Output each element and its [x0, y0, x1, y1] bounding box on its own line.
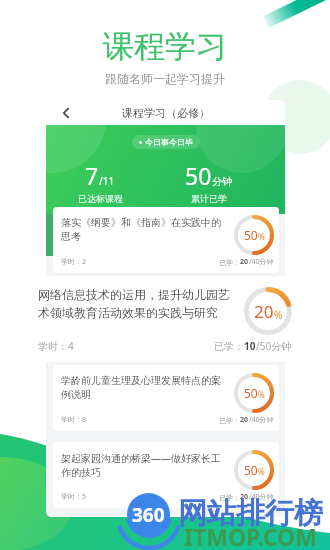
staticText: 课程学习 [103, 27, 227, 66]
staticText: 50 [244, 385, 258, 401]
staticText: 50 [244, 462, 258, 478]
staticText: 分钟 [212, 175, 232, 188]
staticText: /40分钟 [249, 492, 274, 502]
staticText: 已学： [219, 493, 240, 502]
staticText: 20 [254, 300, 274, 323]
staticText: 50 [185, 160, 212, 191]
staticText: 20 [240, 257, 249, 267]
staticText: /11 [99, 174, 115, 188]
button[interactable]: 架起家园沟通的桥梁——做好家长工作的技巧 [53, 442, 279, 508]
staticText: 课程学习（必修） [122, 106, 210, 120]
staticText: 已学： [219, 258, 240, 267]
staticText: 10 [244, 339, 256, 353]
staticText: 7 [85, 160, 99, 191]
staticText: 网络信息技术的运用，提升幼儿园艺术领域教育活动效果的实践与研究 [38, 287, 238, 321]
staticText: 学时：5 [61, 492, 87, 502]
button[interactable]: Back [58, 105, 74, 121]
staticText: 学时：4 [38, 339, 74, 353]
staticText: 已学： [219, 416, 240, 425]
staticText: 已达标课程 [78, 193, 123, 204]
staticText: /40分钟 [249, 415, 274, 425]
staticText: /40分钟 [249, 257, 274, 267]
staticText: % [258, 231, 265, 242]
staticText: 20 [240, 492, 249, 502]
staticText: % [274, 308, 283, 322]
staticText: 360 [132, 502, 165, 528]
staticText: 今日事今日毕 [145, 137, 193, 147]
staticText: 网站排行榜 [178, 495, 323, 532]
staticText: 跟随名师一起学习提升 [105, 71, 225, 86]
staticText: % [258, 466, 265, 477]
button[interactable]: 学龄前儿童生理及心理发展特点的案例说明 [53, 365, 279, 431]
staticText: 50 [244, 227, 258, 243]
button[interactable]: 落实《纲要》和《指南》在实践中的思考 [53, 207, 279, 273]
staticText: 已学： [214, 340, 244, 353]
button[interactable]: 网络信息技术的运用，提升幼儿园艺术领域教育活动效果的实践与研究 [20, 276, 307, 362]
staticText: ITMOP.COM [184, 521, 317, 550]
staticText: 累计已学 [191, 193, 227, 204]
staticText: 学龄前儿童生理及心理发展特点的案例说明 [61, 374, 227, 401]
staticText: 学时：8 [61, 415, 87, 425]
staticText: 架起家园沟通的桥梁——做好家长工作的技巧 [61, 451, 227, 479]
staticText: % [258, 389, 265, 400]
staticText: 20 [240, 415, 249, 425]
staticText: 学时：2 [61, 257, 87, 267]
staticText: /50分钟 [256, 339, 292, 353]
staticText: 落实《纲要》和《指南》在实践中的思考 [61, 216, 227, 243]
